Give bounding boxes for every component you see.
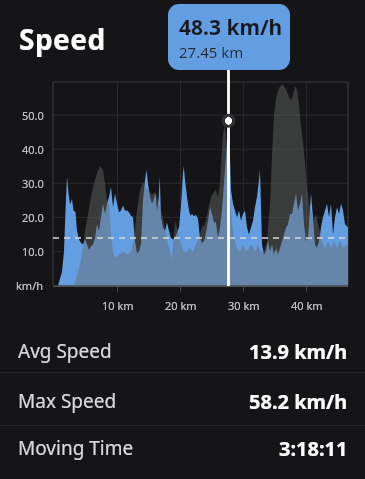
staticText: 40 km [291,298,323,313]
staticText: 30.0 [22,176,44,191]
staticText: 20 km [165,298,197,313]
staticText: 48.3 km/h [179,13,283,42]
staticText: km/h [16,278,44,293]
staticText: 58.2 km/h [249,388,348,415]
staticText: Max Speed [18,388,117,414]
staticText: 10 km [102,298,134,313]
button[interactable]: Max Speed [0,377,365,425]
staticText: 50.0 [22,108,44,123]
button[interactable]: Avg Speed [0,328,365,374]
staticText: 3:18:11 [279,435,348,462]
staticText: Avg Speed [18,338,112,364]
button[interactable]: 48.3 km/h [168,4,290,70]
staticText: 40.0 [22,142,44,157]
staticText: 27.45 km [179,42,244,62]
staticText: 10.0 [22,244,44,259]
staticText: 13.9 km/h [249,338,348,365]
staticText: Moving Time [18,435,134,461]
staticText: 30 km [228,298,260,313]
button[interactable]: Moving Time [0,426,365,470]
staticText: Speed [19,20,106,58]
staticText: 20.0 [22,210,44,225]
